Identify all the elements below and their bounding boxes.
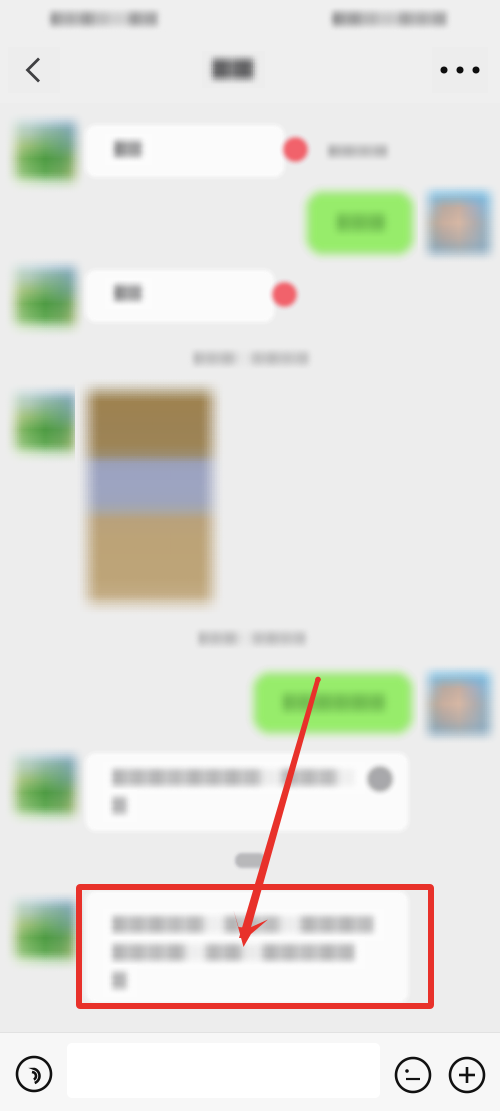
button[interactable]: Back [8, 47, 60, 93]
button[interactable]: Emoji [394, 1056, 432, 1094]
button[interactable]: More [432, 47, 488, 93]
button[interactable]: More options [448, 1056, 486, 1094]
button[interactable]: Voice input [15, 1055, 53, 1093]
